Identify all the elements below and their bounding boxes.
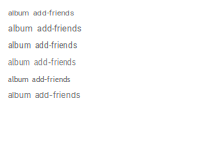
staticText: album add-friends	[8, 90, 80, 100]
staticText: album add-friends	[8, 23, 81, 34]
staticText: album add-friends	[8, 56, 76, 68]
staticText: album add-friends	[8, 39, 77, 50]
staticText: album add-friends	[8, 74, 70, 84]
staticText: album add-friends	[8, 8, 74, 17]
